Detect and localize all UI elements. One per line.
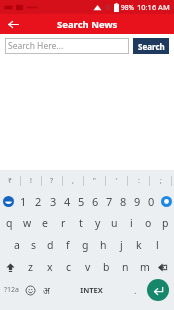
- button[interactable]: 5: [74, 190, 88, 212]
- staticText: c: [66, 260, 72, 274]
- button[interactable]: j: [112, 234, 130, 256]
- staticText: f: [66, 238, 70, 252]
- staticText: ;: [160, 176, 162, 186]
- button[interactable]: ': [106, 172, 127, 190]
- staticText: 1: [20, 194, 27, 209]
- staticText: j: [120, 238, 123, 252]
- button[interactable]: .: [128, 278, 142, 302]
- button[interactable]: ₹: [0, 172, 20, 190]
- button[interactable]: y: [89, 212, 106, 234]
- staticText: 6: [92, 194, 99, 209]
- staticText: g: [82, 238, 89, 252]
- staticText: m: [140, 260, 150, 274]
- button[interactable]: ?: [42, 172, 62, 190]
- button[interactable]: p: [157, 212, 174, 234]
- staticText: d: [47, 238, 54, 252]
- button[interactable]: f: [59, 234, 76, 256]
- button[interactable]: !: [21, 172, 41, 190]
- staticText: .: [134, 284, 137, 296]
- staticText: Search Here...: [8, 40, 64, 52]
- staticText: h: [100, 238, 107, 252]
- staticText: ?12a: [4, 285, 19, 295]
- button[interactable]: Emoji: [22, 278, 38, 302]
- button[interactable]: s: [25, 234, 42, 256]
- button[interactable]: x: [40, 256, 59, 278]
- staticText: 0: [148, 194, 155, 209]
- staticText: i: [130, 216, 133, 230]
- staticText: w: [23, 216, 32, 230]
- staticText: 2: [35, 194, 42, 209]
- staticText: 10:16 AM: [137, 2, 170, 12]
- button[interactable]: 7: [102, 190, 116, 212]
- staticText: k: [136, 238, 142, 252]
- staticText: :: [138, 176, 140, 186]
- button[interactable]: 4: [60, 190, 74, 212]
- button[interactable]: Back: [4, 15, 22, 33]
- button[interactable]: ;: [150, 172, 171, 190]
- staticText: a: [14, 238, 20, 252]
- button[interactable]: a: [8, 234, 25, 256]
- staticText: 5: [78, 194, 85, 209]
- button[interactable]: अ: [38, 278, 54, 302]
- staticText: 7: [106, 194, 113, 209]
- button[interactable]: :: [128, 172, 149, 190]
- button[interactable]: u: [106, 212, 123, 234]
- button[interactable]: q: [0, 212, 18, 234]
- button[interactable]: l: [148, 234, 166, 256]
- staticText: Search: [138, 41, 165, 52]
- staticText: b: [103, 260, 110, 274]
- staticText: t: [79, 216, 83, 230]
- button[interactable]: 9: [130, 190, 144, 212]
- staticText: 3: [50, 194, 57, 209]
- staticText: p: [162, 216, 169, 230]
- button[interactable]: n: [116, 256, 135, 278]
- button[interactable]: m: [135, 256, 154, 278]
- button[interactable]: Shift: [0, 256, 20, 278]
- button[interactable]: Settings: [158, 190, 174, 212]
- staticText: ': [116, 176, 118, 186]
- button[interactable]: Backspace: [154, 256, 174, 278]
- button[interactable]: 6: [88, 190, 102, 212]
- button[interactable]: v: [78, 256, 97, 278]
- button[interactable]: i: [123, 212, 140, 234]
- button[interactable]: k: [130, 234, 148, 256]
- button[interactable]: 2: [31, 190, 46, 212]
- button[interactable]: 0: [144, 190, 158, 212]
- button[interactable]: c: [59, 256, 78, 278]
- button[interactable]: 8: [116, 190, 130, 212]
- button[interactable]: Emoji: [0, 190, 16, 212]
- button[interactable]: ": [84, 172, 105, 190]
- staticText: q: [6, 216, 13, 230]
- staticText: 4: [64, 194, 71, 209]
- staticText: Search News: [57, 18, 118, 31]
- button[interactable]: g: [76, 234, 94, 256]
- staticText: l: [156, 238, 159, 252]
- button[interactable]: b: [97, 256, 116, 278]
- staticText: v: [85, 260, 91, 274]
- button[interactable]: 3: [46, 190, 60, 212]
- staticText: INTEX: [80, 285, 103, 295]
- button[interactable]: 1: [16, 190, 31, 212]
- button[interactable]: Enter: [142, 278, 174, 302]
- button[interactable]: r: [54, 212, 72, 234]
- button[interactable]: Space: [54, 278, 128, 302]
- staticText: !: [30, 176, 32, 186]
- staticText: n: [122, 260, 129, 274]
- button[interactable]: e: [36, 212, 54, 234]
- button[interactable]: h: [94, 234, 112, 256]
- staticText: r: [61, 216, 66, 230]
- staticText: ": [93, 176, 96, 186]
- button[interactable]: d: [42, 234, 59, 256]
- staticText: ?: [50, 176, 54, 186]
- button[interactable]: ?12a: [0, 278, 22, 302]
- button[interactable]: ,: [63, 172, 83, 190]
- staticText: 98%: [121, 3, 134, 12]
- staticText: y: [95, 216, 101, 230]
- button[interactable]: Search: [133, 38, 169, 54]
- button[interactable]: o: [140, 212, 157, 234]
- button[interactable]: z: [20, 256, 40, 278]
- button[interactable]: w: [18, 212, 36, 234]
- staticText: o: [145, 216, 152, 230]
- button[interactable]: t: [72, 212, 89, 234]
- button[interactable]: Search Here...: [5, 38, 129, 54]
